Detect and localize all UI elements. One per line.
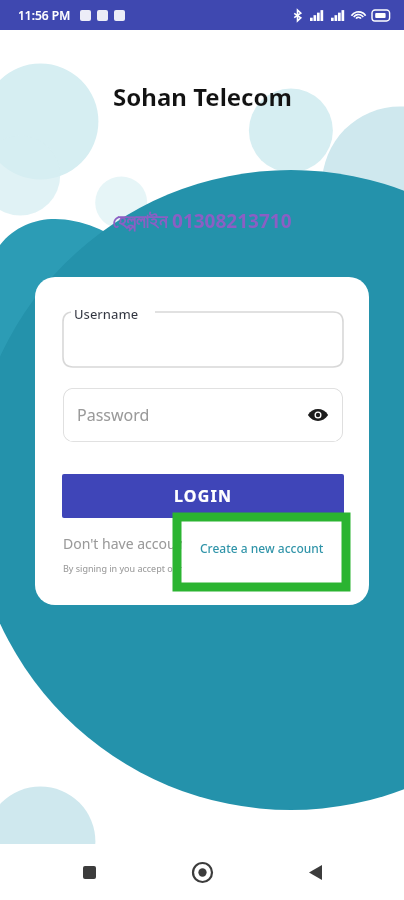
- button[interactable]: Create a new account: [200, 538, 324, 554]
- staticText: হেল্পলাইন 01308213710: [112, 208, 292, 234]
- staticText: Username: [74, 305, 139, 323]
- button[interactable]: Don't have account: [63, 534, 190, 553]
- button[interactable]: Create a new account: [200, 540, 324, 556]
- button[interactable]: Back: [291, 848, 339, 896]
- button[interactable]: Home: [178, 848, 226, 896]
- button[interactable]: Show password: [305, 402, 331, 428]
- staticText: Sohan Telecom: [113, 80, 292, 113]
- button[interactable]: Recents: [65, 848, 113, 896]
- button[interactable]: Username: [63, 312, 343, 367]
- button[interactable]: Password: [63, 388, 343, 442]
- staticText: Password: [77, 404, 150, 426]
- staticText: By signing in you accept our T: [63, 562, 190, 574]
- button[interactable]: LOGIN: [62, 474, 344, 518]
- staticText: LOGIN: [174, 485, 233, 507]
- staticText: 11:56 PM: [18, 7, 71, 23]
